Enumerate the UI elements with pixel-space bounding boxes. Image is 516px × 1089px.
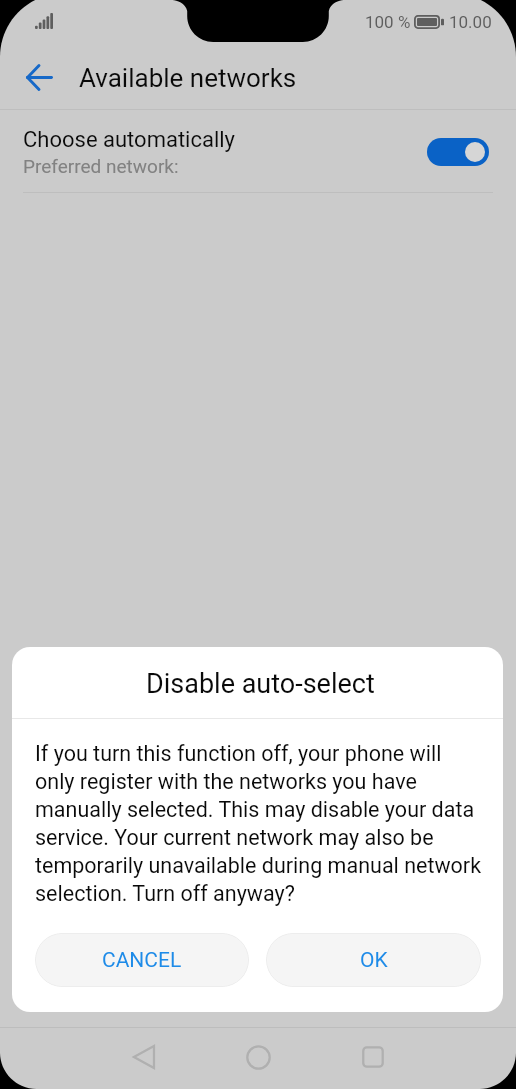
button[interactable]: Back	[15, 53, 63, 101]
staticText: Disable auto-select	[146, 668, 375, 700]
button[interactable]: Recent apps	[343, 1027, 403, 1089]
staticText: Preferred network:	[23, 155, 179, 177]
button[interactable]: OK	[266, 933, 481, 987]
staticText: OK	[360, 948, 388, 973]
button[interactable]: CANCEL	[35, 933, 249, 987]
staticText: If you turn this function off, your phon…	[35, 741, 485, 906]
staticText: Available networks	[79, 63, 297, 93]
button[interactable]: Choose automatically	[427, 138, 489, 166]
button[interactable]: Home	[228, 1027, 288, 1089]
button[interactable]: Back	[113, 1027, 173, 1089]
button[interactable]: Choose automatically	[0, 110, 516, 193]
staticText: 10.00	[449, 12, 492, 32]
staticText: CANCEL	[102, 948, 182, 973]
staticText: 100 %	[365, 12, 411, 32]
staticText: Choose automatically	[23, 127, 236, 153]
